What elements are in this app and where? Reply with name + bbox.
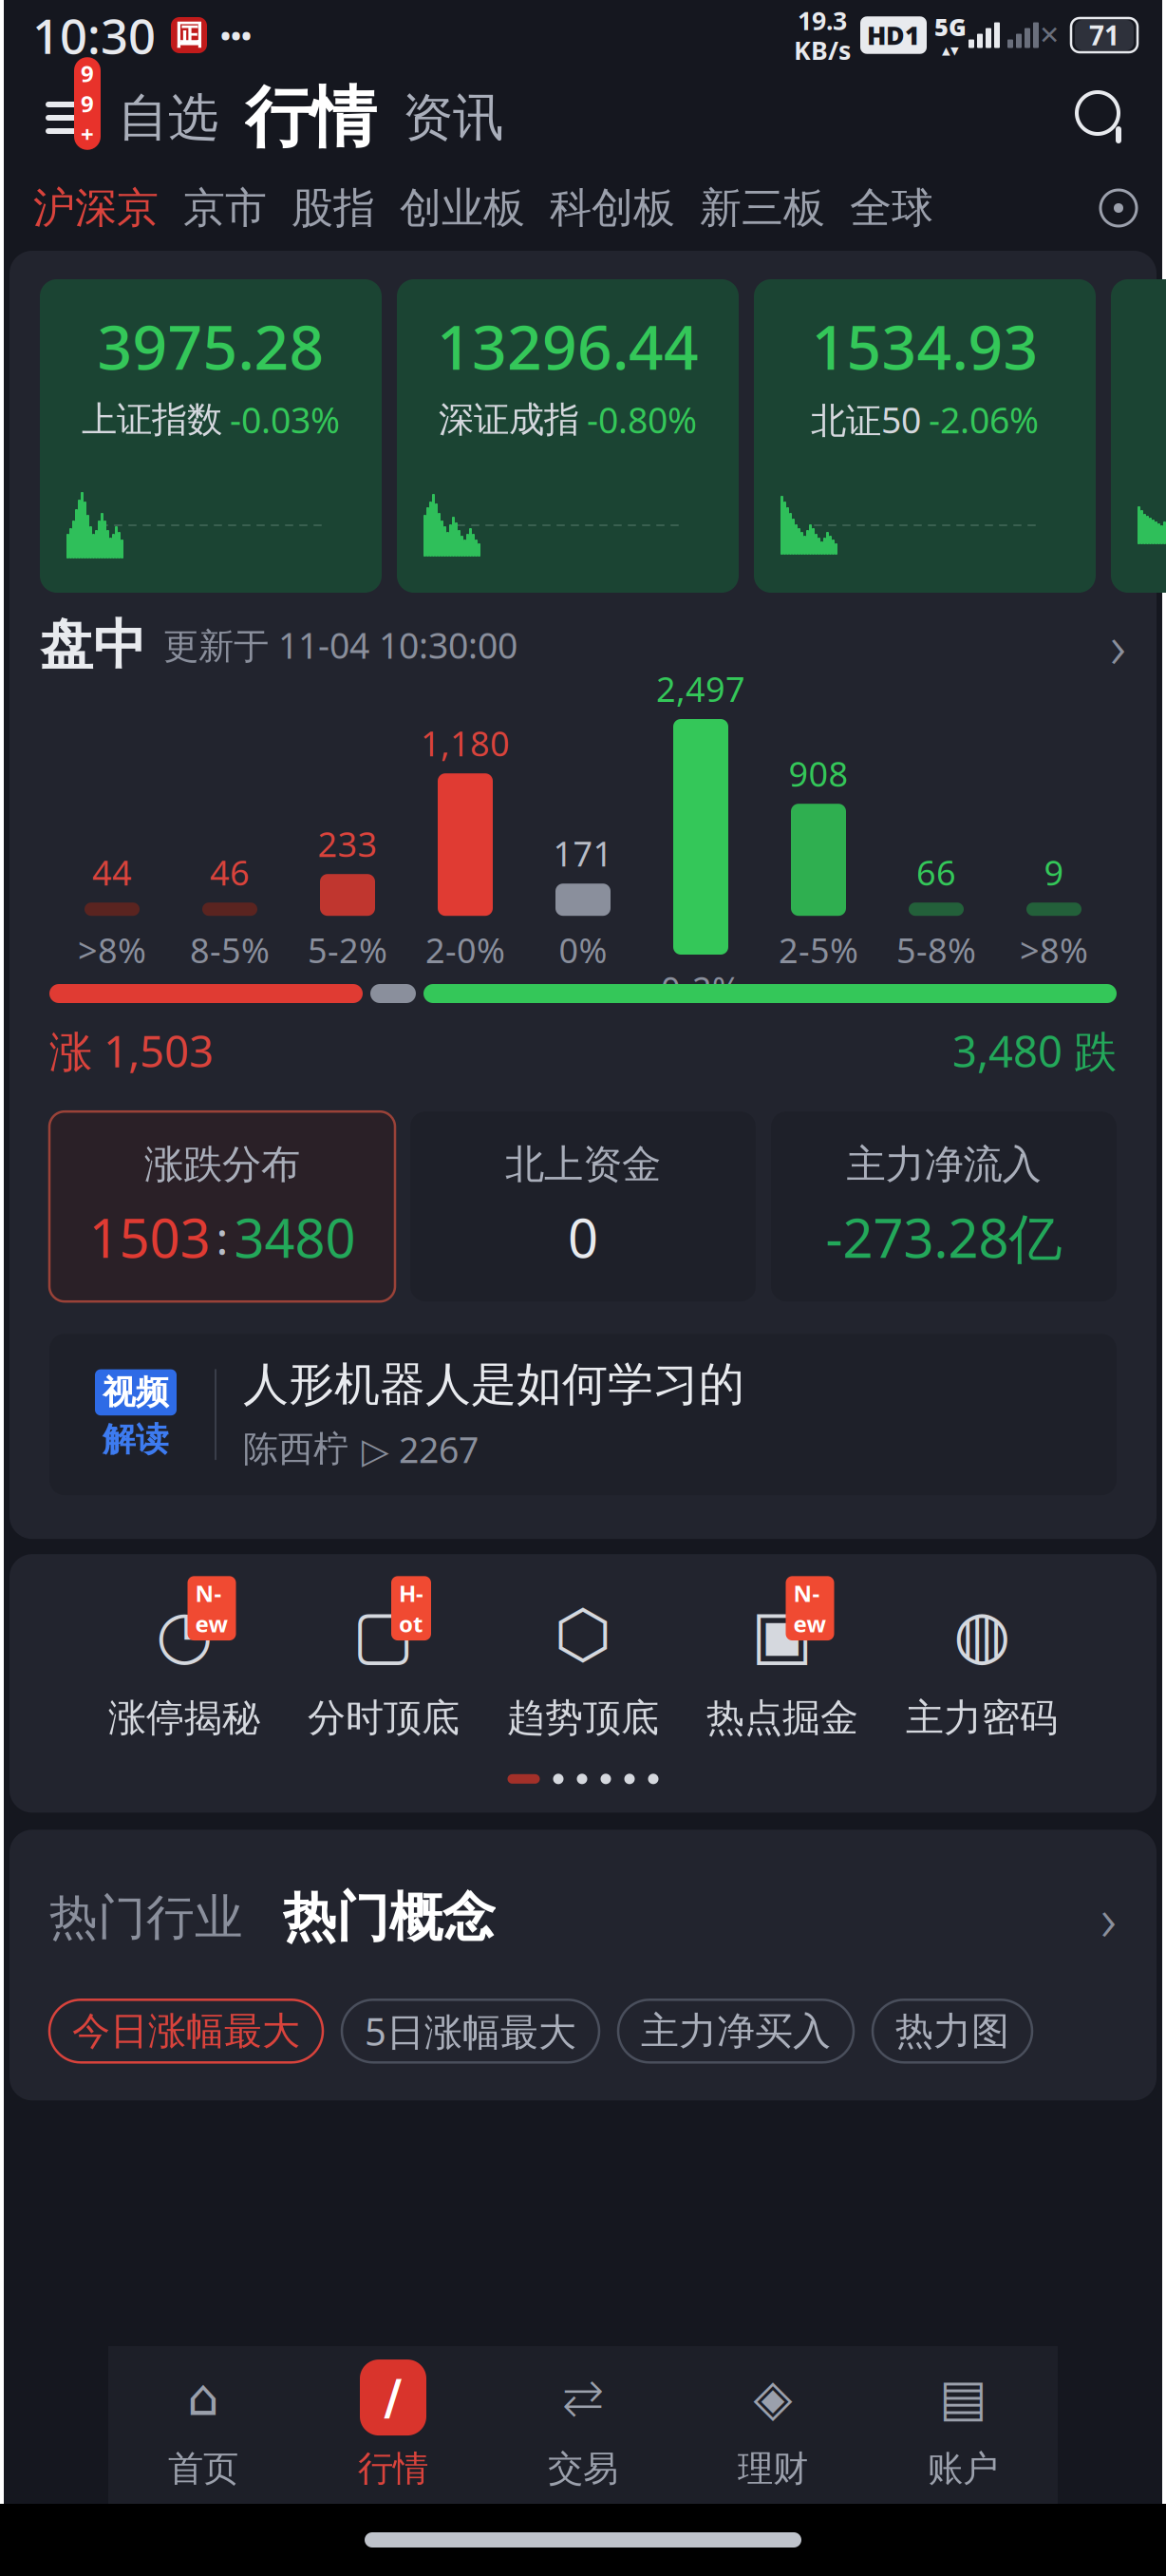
staticText: ∕ xyxy=(384,2370,402,2425)
staticText: 13296.44 xyxy=(437,306,699,387)
staticText: 盘中 xyxy=(40,612,146,678)
button[interactable]: 全球 xyxy=(837,182,946,234)
button[interactable]: ⇄ xyxy=(488,2354,678,2496)
staticText: ••• xyxy=(220,17,252,54)
staticText: 9 xyxy=(1044,850,1064,895)
button[interactable]: 盘中 xyxy=(9,593,1157,697)
staticText: 趋势顶底 xyxy=(507,1695,659,1741)
button[interactable]: ◈ xyxy=(678,2354,868,2496)
staticText: 0% xyxy=(559,927,607,973)
staticText: 分时顶底 xyxy=(308,1695,460,1741)
button[interactable]: 科创板 xyxy=(537,182,687,234)
staticText: ▤ xyxy=(939,2369,987,2426)
staticText: 股指 xyxy=(291,182,375,234)
button[interactable]: 涨跌分布 xyxy=(49,1112,395,1301)
staticText: 北上资金 xyxy=(505,1140,661,1189)
staticText: New xyxy=(195,1578,228,1638)
button[interactable]: 主力净流入 xyxy=(771,1112,1117,1301)
button[interactable]: 热门行业 xyxy=(49,1888,243,1947)
staticText: 主力净流入 xyxy=(846,1140,1041,1189)
staticText: 5日涨幅最大 xyxy=(365,2006,576,2056)
button[interactable]: 菜单 xyxy=(28,86,104,149)
staticText: -0.03% xyxy=(230,396,340,443)
button[interactable]: ▣ xyxy=(683,1588,882,1741)
staticText: 囸 xyxy=(175,18,203,52)
button[interactable]: 13296.44 xyxy=(397,279,739,593)
button[interactable]: 搜索 xyxy=(1067,83,1138,153)
button[interactable]: 2210 xyxy=(1111,279,1166,593)
button[interactable]: 新三板 xyxy=(687,182,837,234)
staticText: New xyxy=(793,1578,827,1638)
staticText: 233 xyxy=(318,821,377,866)
button[interactable]: 北上资金 xyxy=(410,1112,756,1301)
staticText: › xyxy=(1100,1877,1117,1958)
staticText: ✕ xyxy=(1039,21,1060,50)
button[interactable]: 主力净买入 xyxy=(618,2000,854,2062)
staticText: 北证50 xyxy=(811,396,921,443)
staticText: 19.3 xyxy=(798,3,847,37)
staticText: : xyxy=(216,1207,228,1267)
button[interactable]: 京市 xyxy=(171,182,279,234)
staticText: 交易 xyxy=(548,2447,618,2491)
staticText: ▴▾ xyxy=(942,41,959,60)
staticText: 1503 xyxy=(89,1202,210,1273)
staticText: HD1 xyxy=(867,18,920,52)
button[interactable]: 热门概念 xyxy=(243,1885,496,1950)
button[interactable]: 股指 xyxy=(279,182,387,234)
staticText: ⇄ xyxy=(562,2369,604,2426)
button[interactable]: 1534.93 xyxy=(754,279,1096,593)
staticText: 热门行业 xyxy=(49,1888,243,1947)
staticText: 沪深京 xyxy=(33,182,159,234)
button[interactable]: 行情 xyxy=(232,77,389,158)
staticText: 10:30 xyxy=(32,3,156,67)
staticText: 66 xyxy=(916,850,956,895)
button[interactable]: ∕ xyxy=(298,2354,488,2496)
staticText: 2-5% xyxy=(779,927,858,973)
button[interactable]: 沪深京 xyxy=(21,182,171,234)
staticText: 自选 xyxy=(118,87,218,149)
staticText: 8-5% xyxy=(190,927,270,973)
staticText: ▣ xyxy=(751,1597,814,1671)
staticText: 上证指数 xyxy=(82,398,222,441)
staticText: 陈西柠 xyxy=(243,1427,348,1471)
staticText: 涨 1,503 xyxy=(49,1022,214,1079)
button[interactable]: 今日涨幅最大 xyxy=(49,2000,323,2062)
button[interactable]: 5日涨幅最大 xyxy=(342,2000,599,2062)
button[interactable]: 资讯 xyxy=(389,87,517,149)
staticText: 主力密码 xyxy=(906,1695,1058,1741)
staticText: 主力净买入 xyxy=(641,2008,831,2054)
button[interactable]: ◔ xyxy=(85,1588,284,1741)
button[interactable]: ▢ xyxy=(284,1588,483,1741)
button[interactable]: ◍ xyxy=(882,1588,1081,1741)
button[interactable]: ⌂ xyxy=(108,2354,298,2496)
staticText: 行情 xyxy=(245,77,376,158)
staticText: 涨跌分布 xyxy=(144,1140,300,1189)
staticText: ▢ xyxy=(352,1597,415,1671)
button[interactable]: 热力图 xyxy=(873,2000,1032,2062)
staticText: 908 xyxy=(789,751,848,796)
button[interactable]: 视频 xyxy=(49,1334,1117,1495)
button[interactable]: 更多 xyxy=(1100,1877,1117,1958)
button[interactable]: ⬡ xyxy=(483,1588,683,1741)
button[interactable]: 3975.28 xyxy=(40,279,382,593)
staticText: 涨停揭秘 xyxy=(108,1695,260,1741)
staticText: 2-0% xyxy=(425,927,505,973)
staticText: -2.06% xyxy=(929,396,1039,443)
staticText: 新三板 xyxy=(700,182,825,234)
staticText: 热力图 xyxy=(895,2008,1009,2054)
staticText: ▷ 2267 xyxy=(362,1426,479,1473)
staticText: 今日涨幅最大 xyxy=(72,2008,300,2054)
staticText: 热门概念 xyxy=(283,1885,496,1950)
staticText: ◍ xyxy=(953,1597,1010,1671)
staticText: 热点掘金 xyxy=(706,1695,858,1741)
staticText: 科创板 xyxy=(550,182,675,234)
button[interactable]: 自选 xyxy=(104,87,232,149)
staticText: 深证成指 xyxy=(439,398,579,441)
button[interactable]: 定位 xyxy=(1092,181,1145,235)
staticText: 0-2% xyxy=(661,966,741,1011)
staticText: 99+ xyxy=(81,58,94,149)
button[interactable]: ▤ xyxy=(868,2354,1058,2496)
staticText: >8% xyxy=(1020,927,1088,973)
staticText: ⬡ xyxy=(554,1597,612,1671)
button[interactable]: 创业板 xyxy=(387,182,537,234)
